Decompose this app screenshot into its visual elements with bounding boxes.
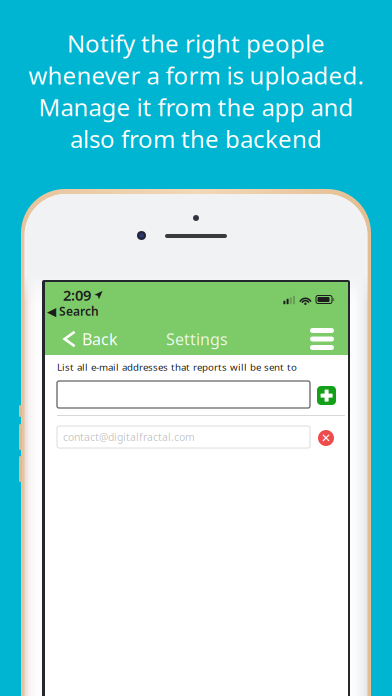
staticText: contact@digitalfractal.com: [63, 430, 195, 444]
button[interactable]: Add e-mail address: [317, 386, 336, 405]
staticText: 2:09: [63, 285, 91, 305]
button[interactable]: Menu: [303, 326, 341, 352]
button[interactable]: Back: [63, 326, 141, 352]
staticText: Notify the right people: [67, 27, 325, 59]
staticText: Back: [82, 328, 118, 350]
staticText: also from the backend: [70, 123, 322, 155]
staticText: ◀ Search: [47, 303, 99, 319]
staticText: List all e-mail addresses that reports w…: [57, 360, 297, 373]
staticText: ✕: [321, 431, 331, 445]
staticText: whenever a form is uploaded.: [28, 59, 363, 91]
staticText: Manage it from the app and: [38, 91, 353, 123]
staticText: Settings: [166, 328, 228, 350]
button[interactable]: Remove e-mail address: [318, 430, 334, 446]
